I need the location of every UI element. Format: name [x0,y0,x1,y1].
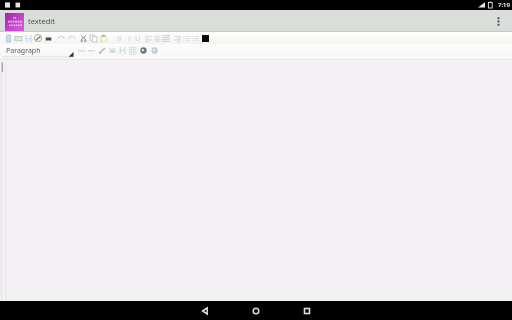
button[interactable]: App icon [5,13,24,32]
button[interactable]: Save [23,32,33,44]
button[interactable]: Insert object [138,44,148,56]
button[interactable]: Justify [161,32,171,44]
button[interactable]: Refresh [149,44,159,56]
button[interactable]: Paste [98,32,108,44]
button[interactable]: Italic [124,32,134,44]
button[interactable]: Bold [114,32,124,44]
button[interactable]: Redo [67,32,77,44]
button[interactable]: Back [190,301,220,320]
button[interactable]: Decrease indent [76,44,86,56]
staticText: textedit [28,16,55,26]
staticText: U [135,33,141,43]
button[interactable]: Insert image [107,44,117,56]
button[interactable]: Copy [88,32,98,44]
button[interactable]: Save as [33,32,43,44]
button[interactable]: Open [13,32,23,44]
button[interactable]: Recents [292,301,322,320]
staticText: B [117,33,122,43]
button[interactable]: Highlight [97,44,107,56]
button[interactable]: Align right [172,32,182,44]
button[interactable]: Align centre [152,32,162,44]
button[interactable]: Cut [78,32,88,44]
button[interactable]: Numbered list [190,32,200,44]
button[interactable]: Increase indent [86,44,96,56]
button[interactable]: Paragraph [2,44,74,60]
staticText: 7:19 [498,1,510,9]
staticText: Paragraph [6,46,41,56]
button[interactable]: Insert link [117,44,127,56]
button[interactable]: Undo [56,32,66,44]
button[interactable]: New document [3,32,13,44]
button[interactable]: Align left [143,32,153,44]
staticText: I [128,33,131,43]
button[interactable]: Insert table [127,44,137,56]
button[interactable]: Home [241,301,271,320]
button[interactable]: More options [488,10,508,32]
button[interactable]: Bulleted list [181,32,191,44]
button[interactable]: Print [43,32,53,44]
button[interactable]: Underline [133,32,143,44]
